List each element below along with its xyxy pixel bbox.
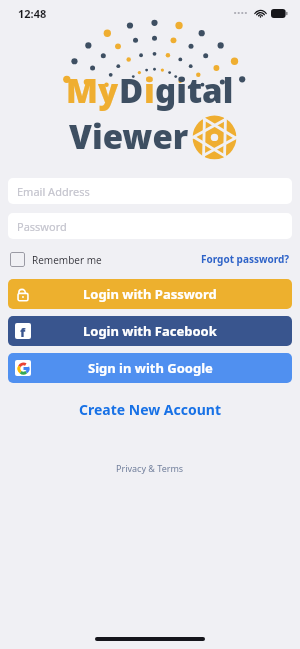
staticText: D [119,68,144,113]
button[interactable]: Remember me [10,252,102,267]
other: Login with Facebook [15,323,31,339]
button[interactable]: Login with password [8,279,292,309]
staticText: gital [155,68,234,113]
button[interactable]: Privacy & Terms [0,459,300,477]
staticText: Login with Facebook [83,322,217,340]
staticText: Email Address [17,184,90,199]
button[interactable]: Create New Account [0,396,300,423]
staticText: Create New Account [79,400,222,419]
staticText: Viewer [69,114,189,159]
button[interactable]: Sign in with Google [8,353,292,383]
button[interactable]: Forgot password? [201,252,290,266]
button[interactable]: Password [8,213,292,239]
staticText: Privacy & Terms [116,462,184,474]
staticText: Remember me [32,253,102,267]
other: Login with password [15,286,31,302]
other: Sign in with Google [15,360,31,376]
button[interactable]: Email Address [8,178,292,204]
staticText: Password [17,219,67,234]
staticText: Forgot password? [201,252,290,266]
staticText: i [144,68,155,113]
staticText: 12:48 [18,6,47,21]
button[interactable]: Login with Facebook [8,316,292,346]
staticText: f [20,323,26,339]
staticText: My [66,68,119,113]
staticText: Sign in with Google [88,359,213,377]
staticText: Login with Password [83,285,217,303]
